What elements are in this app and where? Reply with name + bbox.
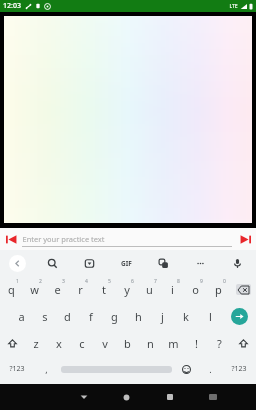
button[interactable]: Search xyxy=(34,250,71,276)
button[interactable]: d xyxy=(56,303,79,330)
button[interactable]: Backspace xyxy=(230,276,256,303)
button[interactable]: Space xyxy=(58,357,174,381)
staticText: q xyxy=(8,282,15,297)
button[interactable]: s xyxy=(33,303,56,330)
button[interactable]: y xyxy=(115,276,138,303)
button[interactable]: Switch keyboard xyxy=(191,384,234,410)
staticText: l xyxy=(209,309,212,324)
button[interactable]: i xyxy=(161,276,184,303)
button[interactable]: Previous xyxy=(0,228,22,250)
staticText: v xyxy=(102,336,108,351)
button[interactable]: x xyxy=(47,330,70,357)
button[interactable]: l xyxy=(198,303,222,330)
button[interactable]: Recent apps xyxy=(148,384,191,410)
button[interactable]: Shift xyxy=(0,330,24,357)
staticText: f xyxy=(89,309,93,324)
staticText: c xyxy=(79,336,85,351)
button[interactable]: Voice input xyxy=(219,250,256,276)
staticText: b xyxy=(124,336,131,351)
button[interactable]: j xyxy=(150,303,174,330)
staticText: 7 xyxy=(154,278,157,285)
button[interactable]: a xyxy=(10,303,33,330)
staticText: 2 xyxy=(39,278,42,285)
staticText: 9 xyxy=(200,278,203,285)
button[interactable]: Next xyxy=(234,228,256,250)
button[interactable]: GIF xyxy=(108,250,145,276)
staticText: ?123 xyxy=(9,364,25,374)
button[interactable]: b xyxy=(116,330,139,357)
button[interactable]: Expand toolbar xyxy=(0,250,34,276)
staticText: e xyxy=(54,282,61,297)
staticText: h xyxy=(135,309,142,324)
staticText: ?123 xyxy=(231,364,247,374)
staticText: z xyxy=(33,336,39,351)
button[interactable]: f xyxy=(79,303,102,330)
button[interactable]: More options xyxy=(182,250,219,276)
button[interactable]: ! xyxy=(185,330,208,357)
button[interactable]: ?123 xyxy=(0,357,34,381)
staticText: 4 xyxy=(85,278,88,285)
staticText: 1 xyxy=(16,278,19,285)
staticText: w xyxy=(30,282,39,297)
button[interactable]: u xyxy=(138,276,161,303)
staticText: a xyxy=(18,309,25,324)
staticText: Enter your practice text xyxy=(22,234,105,244)
staticText: u xyxy=(146,282,153,297)
button[interactable]: p xyxy=(207,276,230,303)
button[interactable]: n xyxy=(139,330,162,357)
button[interactable]: Enter your practice text xyxy=(22,228,232,250)
button[interactable]: Back xyxy=(62,384,105,410)
button[interactable]: Enter xyxy=(222,303,256,330)
staticText: g xyxy=(111,309,118,324)
staticText: m xyxy=(168,336,179,351)
button[interactable]: v xyxy=(93,330,116,357)
staticText: 0 xyxy=(223,278,226,285)
button[interactable]: t xyxy=(92,276,115,303)
button[interactable]: z xyxy=(24,330,47,357)
staticText: n xyxy=(147,336,154,351)
staticText: GIF xyxy=(121,259,132,268)
staticText: 5 xyxy=(108,278,111,285)
button[interactable]: Emoji xyxy=(174,357,198,381)
button[interactable]: Shift right xyxy=(231,330,256,357)
button[interactable]: w xyxy=(23,276,46,303)
staticText: o xyxy=(192,282,199,297)
staticText: r xyxy=(78,282,83,297)
button[interactable]: Stickers xyxy=(71,250,108,276)
button[interactable]: k xyxy=(174,303,198,330)
button[interactable]: r xyxy=(69,276,92,303)
staticText: k xyxy=(183,309,189,324)
button[interactable]: ? xyxy=(208,330,231,357)
button[interactable]: c xyxy=(70,330,93,357)
staticText: s xyxy=(42,309,48,324)
staticText: p xyxy=(215,282,222,297)
button[interactable]: o xyxy=(184,276,207,303)
button[interactable]: Translate xyxy=(145,250,182,276)
staticText: LTE xyxy=(229,3,238,10)
button[interactable]: . xyxy=(198,357,222,381)
button[interactable]: ?123 xyxy=(222,357,256,381)
button[interactable]: q xyxy=(0,276,23,303)
staticText: y xyxy=(124,282,130,297)
staticText: ! xyxy=(195,336,198,351)
staticText: 8 xyxy=(177,278,180,285)
staticText: , xyxy=(45,363,48,375)
staticText: t xyxy=(102,282,106,297)
button[interactable]: h xyxy=(126,303,150,330)
staticText: d xyxy=(64,309,71,324)
staticText: 3 xyxy=(62,278,65,285)
button[interactable]: g xyxy=(102,303,126,330)
staticText: ? xyxy=(217,336,222,351)
button[interactable]: m xyxy=(162,330,185,357)
staticText: x xyxy=(56,336,62,351)
staticText: i xyxy=(171,282,174,297)
button[interactable]: Home xyxy=(105,384,148,410)
button[interactable]: e xyxy=(46,276,69,303)
staticText: 6 xyxy=(131,278,134,285)
button[interactable]: , xyxy=(34,357,58,381)
staticText: 12:03 xyxy=(3,1,21,11)
staticText: j xyxy=(161,309,164,324)
staticText: . xyxy=(209,363,212,375)
